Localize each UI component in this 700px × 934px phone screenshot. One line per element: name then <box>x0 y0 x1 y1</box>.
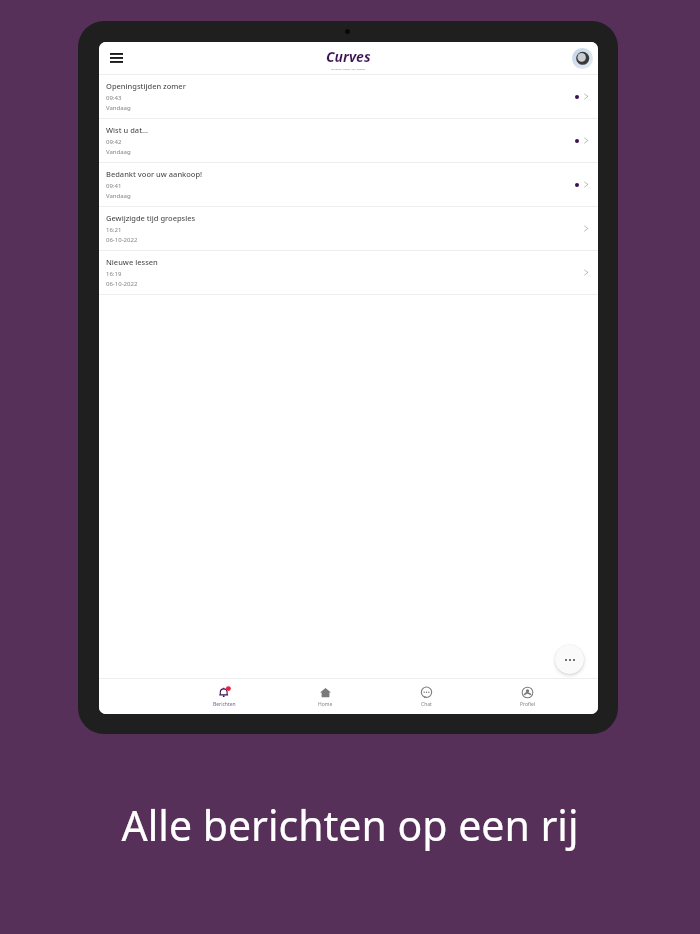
button[interactable]: More options <box>555 645 584 674</box>
staticText: 16:21 <box>106 226 122 234</box>
button[interactable]: Nieuwe lessen <box>99 251 598 294</box>
staticText: 06-10-2022 <box>106 236 138 244</box>
button[interactable]: Gewijzigde tijd groepsles <box>99 207 598 250</box>
staticText: Wist u dat... <box>106 125 149 135</box>
staticText: Vandaag <box>106 192 131 200</box>
button[interactable]: Chat <box>376 679 477 714</box>
staticText: 09:43 <box>106 94 122 102</box>
button[interactable]: Bedankt voor uw aankoop! <box>99 163 598 206</box>
button[interactable]: Berichten <box>173 679 275 714</box>
button[interactable]: Openingstijden zomer <box>99 75 598 118</box>
staticText: Vandaag <box>106 148 131 156</box>
staticText: Curves <box>326 47 371 66</box>
staticText: Chat <box>421 701 432 708</box>
staticText: 09:41 <box>106 182 122 190</box>
staticText: Strength. Power. Your Fitness. <box>331 67 366 70</box>
staticText: Profiel <box>520 701 536 708</box>
staticText: 09:42 <box>106 138 122 146</box>
staticText: 16:19 <box>106 270 122 278</box>
button[interactable]: Wist u dat... <box>99 119 598 162</box>
button[interactable]: Home <box>275 679 376 714</box>
staticText: Gewijzigde tijd groepsles <box>106 213 196 223</box>
staticText: Home <box>318 701 333 708</box>
staticText: 06-10-2022 <box>106 280 138 288</box>
staticText: Vandaag <box>106 104 131 112</box>
button[interactable]: Profiel <box>477 679 578 714</box>
staticText: Bedankt voor uw aankoop! <box>106 169 203 179</box>
button[interactable]: Profile avatar <box>572 48 593 69</box>
staticText: Alle berichten op een rij <box>0 797 700 853</box>
staticText: Nieuwe lessen <box>106 257 158 267</box>
staticText: Berichten <box>213 701 236 708</box>
button[interactable]: Menu <box>104 46 128 70</box>
staticText: Openingstijden zomer <box>106 81 186 91</box>
